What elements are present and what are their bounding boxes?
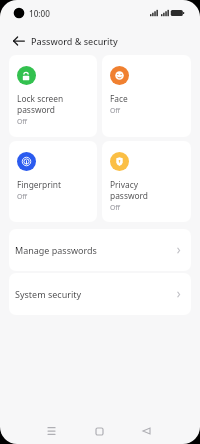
button[interactable]: Face — [102, 55, 191, 137]
staticText: System security — [15, 288, 82, 300]
button[interactable]: System security — [9, 273, 191, 315]
button[interactable]: Home — [91, 423, 107, 439]
button[interactable]: Manage passwords — [9, 229, 191, 271]
button[interactable]: Back — [7, 29, 30, 52]
staticText: Off — [17, 117, 27, 126]
staticText: Fingerprint — [17, 179, 62, 190]
staticText: Privacy password — [110, 179, 177, 201]
staticText: Manage passwords — [15, 244, 97, 256]
staticText: Off — [110, 106, 120, 115]
button[interactable]: Recents — [43, 423, 59, 439]
button[interactable]: Lock screen password — [9, 55, 97, 137]
staticText: Lock screen password — [17, 93, 83, 115]
staticText: Password & security — [31, 35, 118, 47]
staticText: Face — [110, 93, 128, 104]
button[interactable]: Fingerprint — [9, 141, 97, 222]
staticText: 10:00 — [29, 8, 50, 19]
staticText: Off — [110, 203, 120, 212]
button[interactable]: Privacy password — [102, 141, 191, 222]
staticText: Off — [17, 192, 27, 201]
button[interactable]: Back — [138, 423, 154, 439]
